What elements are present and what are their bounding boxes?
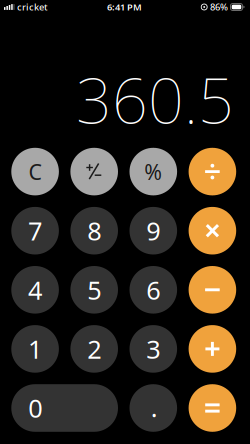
- staticText: 9: [146, 214, 160, 247]
- button[interactable]: 1: [11, 325, 59, 373]
- button[interactable]: 4: [11, 266, 59, 314]
- button[interactable]: 8: [70, 207, 118, 254]
- staticText: 5: [87, 273, 101, 307]
- button[interactable]: .: [129, 384, 177, 432]
- button[interactable]: 7: [11, 207, 59, 254]
- staticText: 360.5: [76, 58, 234, 141]
- button[interactable]: 6: [129, 266, 177, 314]
- staticText: 2: [87, 332, 101, 366]
- staticText: 6:41 PM: [107, 1, 142, 13]
- staticText: C: [29, 157, 42, 186]
- button[interactable]: Equals: [189, 384, 236, 432]
- button[interactable]: Subtract: [189, 266, 236, 314]
- button[interactable]: 5: [70, 266, 118, 314]
- button[interactable]: 9: [129, 207, 177, 254]
- staticText: 4: [28, 273, 42, 307]
- staticText: 8: [87, 214, 101, 247]
- staticText: 1: [28, 332, 42, 366]
- button[interactable]: 2: [70, 325, 118, 373]
- staticText: %: [144, 157, 162, 186]
- staticText: 6: [146, 273, 160, 307]
- button[interactable]: Multiply: [189, 207, 236, 254]
- button[interactable]: Divide: [189, 148, 236, 195]
- staticText: 0: [28, 391, 42, 425]
- button[interactable]: %: [129, 148, 177, 195]
- button[interactable]: Toggle sign: [70, 148, 118, 195]
- button[interactable]: Add: [189, 325, 236, 373]
- button[interactable]: 0: [11, 384, 118, 432]
- staticText: 7: [28, 214, 42, 247]
- staticText: 3: [146, 332, 160, 366]
- button[interactable]: 3: [129, 325, 177, 373]
- button[interactable]: C: [11, 148, 59, 195]
- staticText: .: [151, 391, 158, 424]
- staticText: cricket: [17, 1, 48, 13]
- staticText: 86%: [210, 1, 228, 13]
